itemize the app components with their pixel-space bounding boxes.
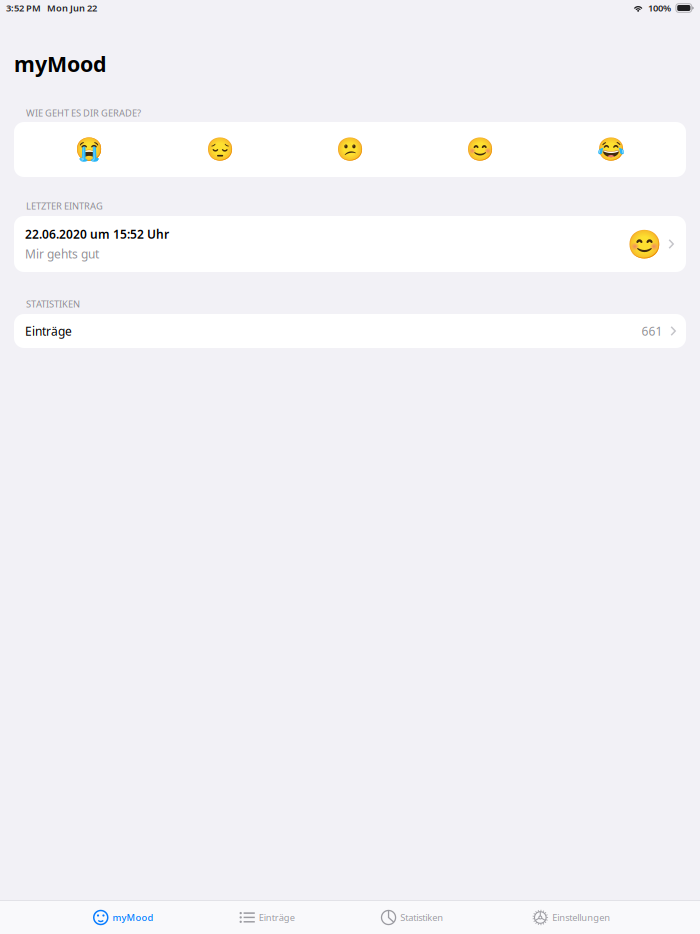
button[interactable]: Einträge <box>14 314 686 348</box>
staticText: 22.06.2020 um 15:52 Uhr <box>25 226 169 242</box>
staticText: 😔 <box>206 137 234 162</box>
staticText: 😊 <box>466 137 494 162</box>
staticText: 😂 <box>597 137 625 162</box>
button[interactable]: Mood 😭 <box>24 122 154 177</box>
staticText: Statistiken <box>400 911 443 924</box>
staticText: 😕 <box>336 137 364 162</box>
button[interactable]: myMood <box>87 904 159 931</box>
staticText: 3:52 PM <box>6 2 41 14</box>
staticText: Mir gehts gut <box>25 246 99 262</box>
button[interactable]: Einträge <box>233 905 301 930</box>
staticText: myMood <box>14 50 106 78</box>
button[interactable]: Einstellungen <box>526 903 616 931</box>
staticText: 😭 <box>75 137 103 162</box>
button[interactable]: Statistiken <box>375 904 449 931</box>
staticText: myMood <box>112 911 153 924</box>
button[interactable]: Mood 😔 <box>154 122 285 177</box>
staticText: LETZTER EINTRAG <box>26 200 103 212</box>
button[interactable]: 22.06.2020 um 15:52 Uhr <box>14 216 686 272</box>
button[interactable]: Mood 😂 <box>546 122 676 177</box>
staticText: 100% <box>648 2 671 14</box>
staticText: 😊 <box>627 228 662 260</box>
button[interactable]: Mood 😕 <box>285 122 415 177</box>
staticText: Mon Jun 22 <box>47 2 97 14</box>
staticText: WIE GEHT ES DIR GERADE? <box>26 107 141 119</box>
staticText: Einträge <box>25 323 72 339</box>
staticText: STATISTIKEN <box>26 298 80 310</box>
button[interactable]: Mood 😊 <box>415 122 546 177</box>
staticText: 661 <box>641 323 662 339</box>
staticText: Einträge <box>259 911 295 924</box>
staticText: Einstellungen <box>552 911 610 924</box>
